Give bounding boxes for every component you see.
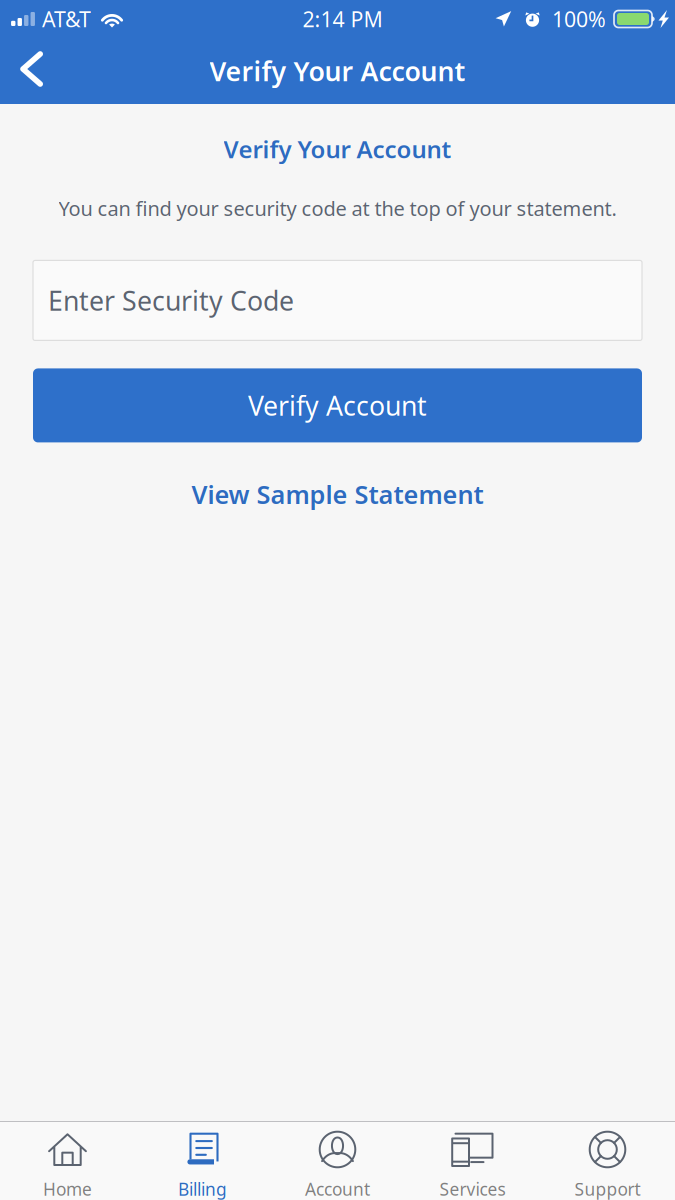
staticText: Verify Account [248,388,427,423]
staticText: AT&T [42,5,91,33]
staticText: Billing [178,1177,227,1200]
staticText: 100% [552,5,606,33]
staticText: View Sample Statement [191,477,483,511]
staticText: You can find your security code at the t… [58,195,616,221]
staticText: Account [305,1177,370,1200]
button[interactable]: Account [270,1116,405,1200]
staticText: Verify Your Account [209,53,465,89]
button[interactable]: Verify Account [0,368,675,442]
button[interactable]: Support [540,1116,675,1200]
staticText: Verify Your Account [223,133,451,165]
staticText: 2:14 PM [302,5,382,33]
button[interactable]: Home [0,1116,135,1200]
button[interactable]: Billing [135,1116,270,1200]
staticText: Support [574,1177,640,1200]
staticText: Services [439,1177,505,1200]
button[interactable]: Services [405,1116,540,1200]
button[interactable]: View Sample Statement [167,467,507,521]
staticText: Home [43,1177,92,1200]
staticText: Enter Security Code [48,283,294,318]
button[interactable]: Back [0,38,67,104]
